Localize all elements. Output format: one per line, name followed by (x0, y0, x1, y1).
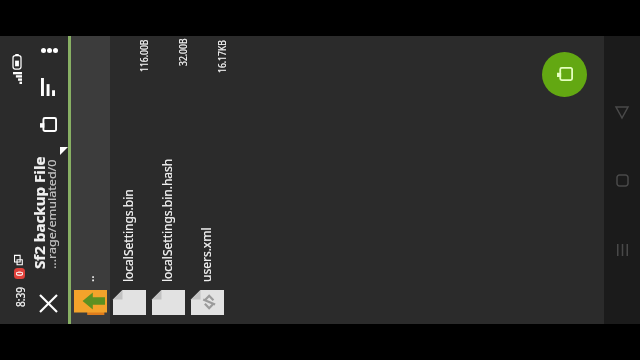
staticText: 16.17KB (214, 39, 229, 73)
staticText: localSettings.bin.hash (159, 158, 175, 282)
button[interactable]: Save backup (542, 52, 587, 97)
button[interactable]: localSettings.bin (110, 36, 149, 324)
staticText: 116.00B (136, 39, 151, 72)
staticText: 8:39 (12, 287, 28, 307)
button[interactable]: More options (28, 36, 68, 70)
button[interactable]: Home (604, 159, 640, 203)
button[interactable]: users.xml (188, 36, 227, 324)
button[interactable]: Close (28, 283, 68, 324)
staticText: ...rage/emulated/0 (44, 158, 59, 269)
button[interactable]: Statistics (28, 70, 68, 102)
staticText: Sf2 backup File (29, 156, 49, 269)
staticText: 32.00B (175, 38, 190, 66)
button[interactable]: .. (71, 36, 110, 324)
staticText: localSettings.bin (120, 189, 136, 282)
button[interactable]: Back (604, 91, 640, 135)
button[interactable]: Recent apps (604, 228, 640, 272)
staticText: users.xml (198, 227, 214, 282)
button[interactable]: localSettings.bin.hash (149, 36, 188, 324)
button[interactable]: Save (28, 105, 68, 145)
staticText: 0 (14, 271, 25, 276)
staticText: .. (81, 275, 97, 282)
